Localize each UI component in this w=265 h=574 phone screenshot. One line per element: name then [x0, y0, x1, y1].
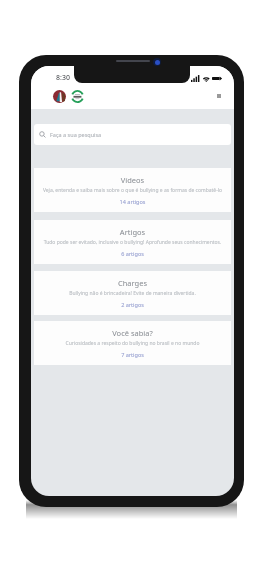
staticText: Curiosidades a respeito do bullying no b…: [34, 340, 231, 347]
staticText: 6 artigos: [34, 250, 231, 257]
button[interactable]: Artigos: [34, 220, 231, 264]
staticText: 14 artigos: [34, 198, 231, 205]
button[interactable]: Vídeos: [34, 168, 231, 212]
staticText: Artigos: [34, 227, 231, 237]
staticText: Faça a sua pesquisa: [50, 131, 102, 138]
staticText: 2 artigos: [34, 301, 231, 308]
staticText: Você sabia?: [34, 328, 231, 338]
button[interactable]: Charges: [34, 271, 231, 315]
button[interactable]: Você sabia?: [34, 321, 231, 365]
staticText: Vídeos: [34, 175, 231, 185]
staticText: Bullying não é brincadeira! Evite de man…: [34, 290, 231, 297]
staticText: 8:30: [56, 73, 70, 83]
staticText: Charges: [34, 278, 231, 288]
staticText: 7 artigos: [34, 351, 231, 358]
staticText: Veja, entenda e saiba mais sobre o que é…: [34, 187, 231, 194]
button[interactable]: Faça a sua pesquisa: [34, 124, 231, 145]
button[interactable]: Menu: [212, 89, 226, 103]
staticText: Tudo pode ser evitado, inclusive o bully…: [34, 239, 231, 246]
